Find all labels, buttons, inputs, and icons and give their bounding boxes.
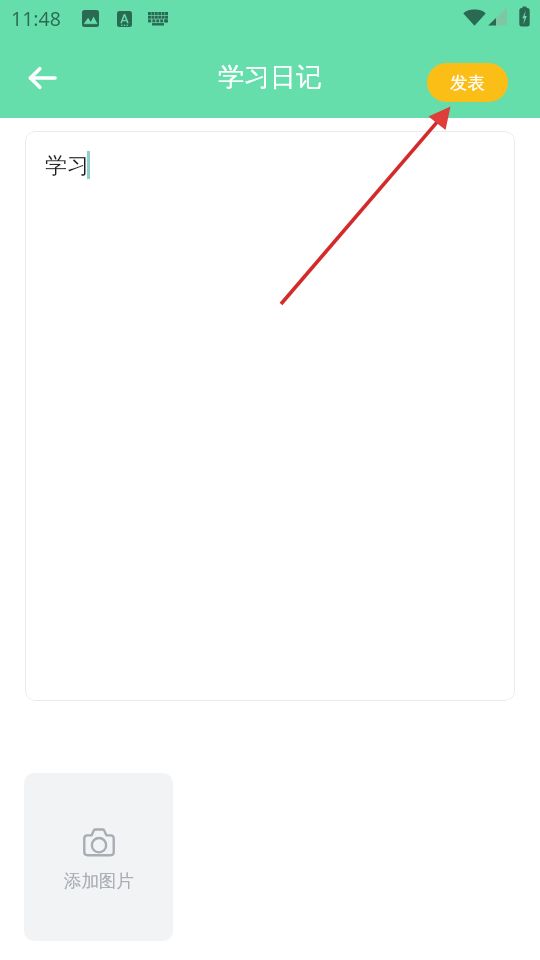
staticText: 11:48 xyxy=(11,5,61,32)
staticText: 添加图片 xyxy=(64,870,134,892)
button[interactable]: 发表 xyxy=(427,63,508,102)
staticText: 发表 xyxy=(450,72,485,94)
staticText: 学习日记 xyxy=(218,61,322,94)
button[interactable]: 学习 xyxy=(25,131,515,701)
button[interactable]: Back xyxy=(20,56,64,100)
staticText: 学习 xyxy=(45,152,89,180)
button[interactable]: 添加图片 xyxy=(24,773,173,941)
